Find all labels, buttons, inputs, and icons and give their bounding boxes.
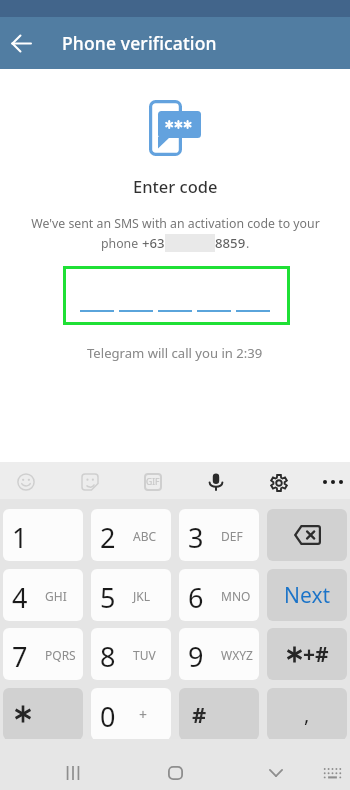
button[interactable] <box>63 266 290 325</box>
staticText: 2 <box>100 519 116 556</box>
staticText: 5 <box>100 579 116 616</box>
staticText: ABC <box>133 528 157 544</box>
staticText: 0 <box>100 698 116 735</box>
button[interactable]: GIF <box>136 465 170 499</box>
button[interactable]: 6 <box>179 569 259 621</box>
staticText: Phone verification <box>62 31 217 55</box>
staticText: MNO <box>221 588 251 604</box>
staticText: WXYZ <box>221 647 253 663</box>
staticText: phone <box>101 235 142 252</box>
button[interactable]: Change keyboard <box>312 753 350 790</box>
button[interactable]: 4 <box>3 569 83 621</box>
staticText: DEF <box>221 528 243 544</box>
staticText: 1 <box>12 519 28 556</box>
staticText: +# <box>303 640 329 669</box>
button[interactable]: # <box>179 688 259 740</box>
staticText: , <box>304 701 310 728</box>
staticText: 9 <box>188 638 204 675</box>
button[interactable]: , <box>267 688 347 740</box>
staticText: +63 <box>142 234 165 252</box>
staticText: 7 <box>12 638 28 675</box>
staticText: 8859 <box>215 234 246 252</box>
staticText: PQRS <box>45 647 76 663</box>
button[interactable]: 5 <box>91 569 171 621</box>
button[interactable]: Stickers <box>73 465 107 499</box>
staticText: Telegram will call you in 2:39 <box>87 344 263 362</box>
button[interactable]: More options <box>316 465 350 499</box>
staticText: Enter code <box>133 175 218 197</box>
button[interactable]: Home <box>155 753 195 790</box>
button[interactable]: Recents <box>53 753 93 790</box>
button[interactable]: +# <box>267 628 347 680</box>
staticText: 8 <box>100 638 116 675</box>
staticText: # <box>192 699 207 729</box>
staticText: 6 <box>188 579 204 616</box>
staticText: GIF <box>146 476 160 488</box>
staticText: 4 <box>12 579 28 616</box>
button[interactable]: 0 <box>91 688 171 740</box>
staticText: GHI <box>45 588 67 604</box>
button[interactable]: Backspace <box>267 509 347 561</box>
button[interactable]: 1 <box>3 509 83 561</box>
staticText: + <box>139 705 148 724</box>
button[interactable]: Hide keyboard <box>256 753 296 790</box>
button[interactable]: 7 <box>3 628 83 680</box>
staticText: JKL <box>133 588 150 604</box>
staticText: We've sent an SMS with an activation cod… <box>31 215 320 232</box>
staticText: Next <box>284 581 331 610</box>
button[interactable]: Emoji <box>9 465 43 499</box>
button[interactable]: Back <box>5 27 37 59</box>
button[interactable]: 3 <box>179 509 259 561</box>
staticText: TUV <box>133 647 156 663</box>
staticText: 3 <box>188 519 204 556</box>
button[interactable]: Next <box>267 569 347 621</box>
button[interactable]: 9 <box>179 628 259 680</box>
button[interactable]: 8 <box>91 628 171 680</box>
button[interactable]: 2 <box>91 509 171 561</box>
button[interactable] <box>3 688 83 740</box>
staticText: . <box>246 235 250 252</box>
button[interactable]: Settings <box>262 466 296 500</box>
button[interactable]: Voice input <box>199 465 233 499</box>
